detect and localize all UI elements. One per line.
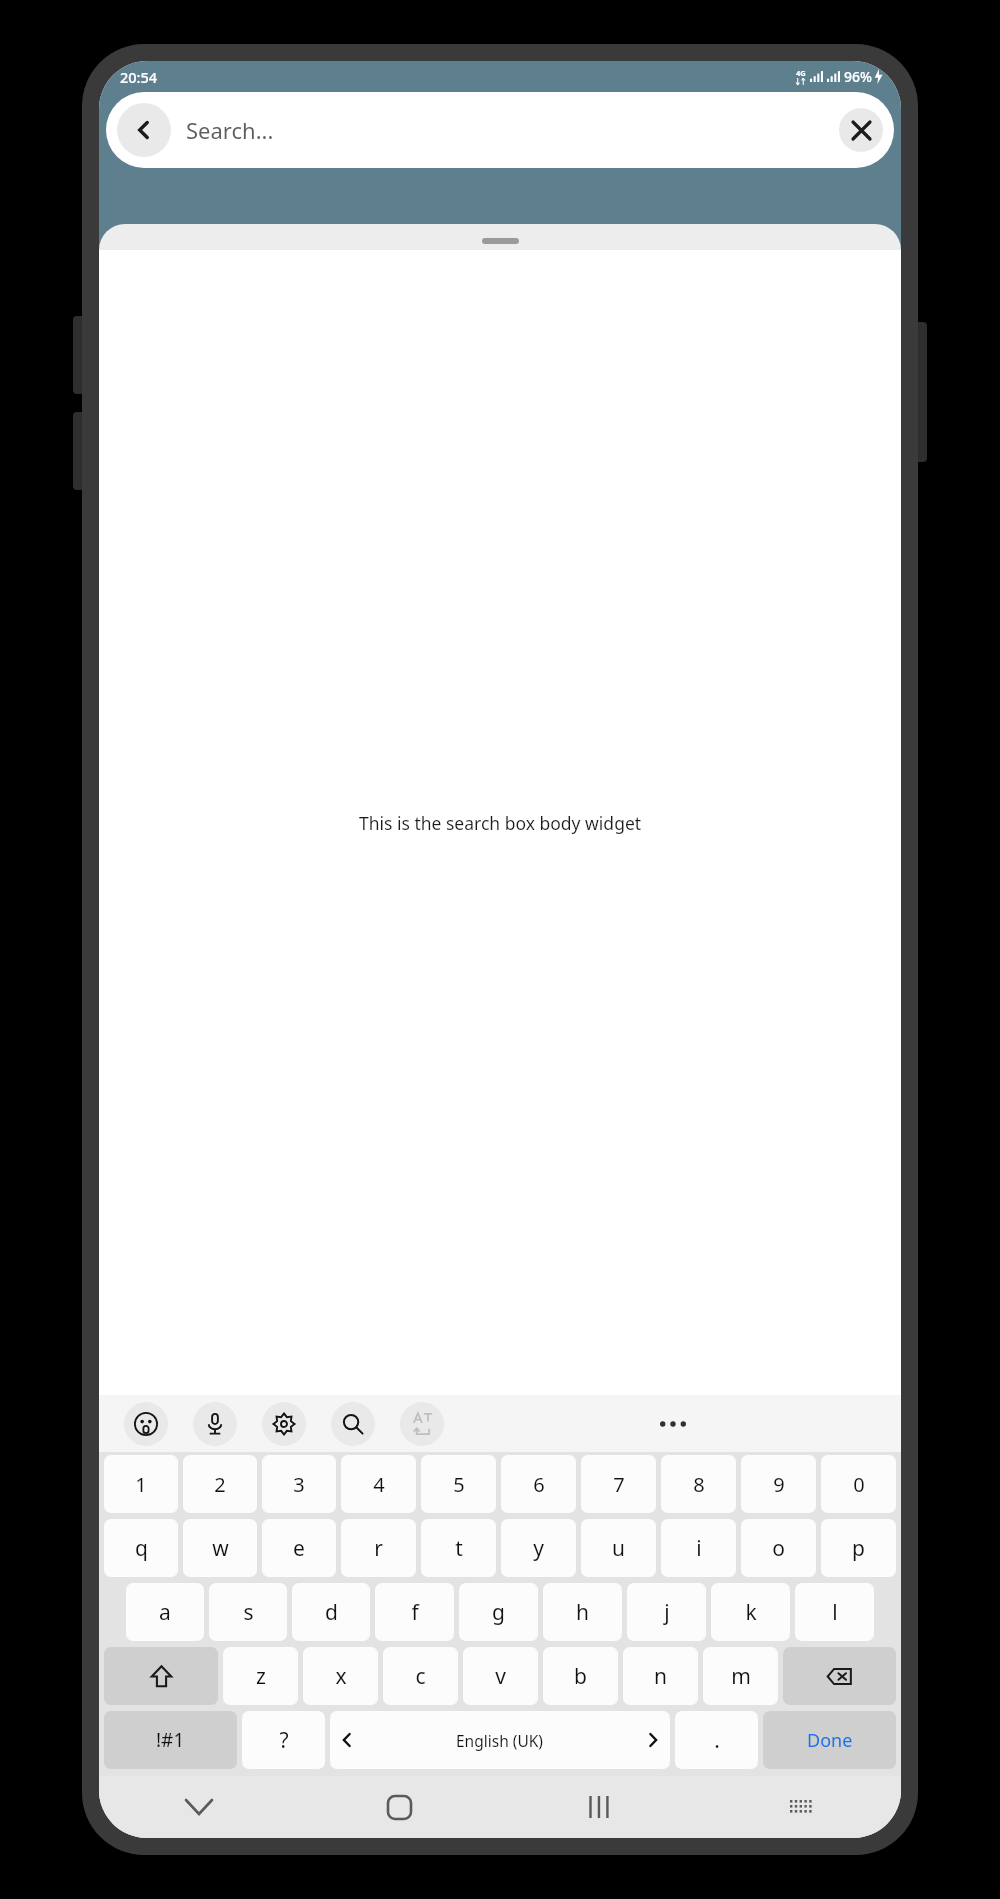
staticText: i — [696, 1534, 702, 1563]
staticText: b — [574, 1662, 587, 1691]
button[interactable]: ? — [242, 1711, 325, 1769]
staticText: 4G — [796, 68, 806, 78]
staticText: 9 — [773, 1471, 785, 1498]
button[interactable]: q — [104, 1519, 178, 1577]
button[interactable]: 1 — [104, 1455, 178, 1513]
staticText: u — [612, 1534, 625, 1563]
staticText: w — [212, 1534, 229, 1563]
button[interactable]: n — [623, 1647, 698, 1705]
staticText: 20:54 — [120, 67, 158, 87]
staticText: x — [335, 1662, 347, 1691]
staticText: n — [654, 1662, 667, 1691]
staticText: 6 — [533, 1471, 545, 1498]
staticText: Done — [807, 1728, 853, 1753]
button[interactable]: Done — [763, 1711, 896, 1769]
staticText: o — [772, 1534, 785, 1563]
staticText: Search... — [186, 115, 274, 145]
button[interactable]: 9 — [741, 1455, 816, 1513]
button[interactable]: l — [795, 1583, 874, 1641]
staticText: y — [533, 1534, 544, 1563]
button[interactable]: d — [292, 1583, 370, 1641]
staticText: This is the search box body widget — [359, 811, 642, 835]
button[interactable]: h — [543, 1583, 622, 1641]
button[interactable]: Backspace — [783, 1647, 896, 1705]
button[interactable]: y — [501, 1519, 576, 1577]
button[interactable]: p — [821, 1519, 896, 1577]
button[interactable]: 6 — [501, 1455, 576, 1513]
staticText: g — [492, 1598, 505, 1627]
button[interactable]: !#1 — [104, 1711, 237, 1769]
button[interactable]: g — [459, 1583, 538, 1641]
button[interactable]: e — [262, 1519, 336, 1577]
button[interactable]: . — [675, 1711, 758, 1769]
button[interactable]: j — [627, 1583, 706, 1641]
staticText: h — [576, 1598, 589, 1627]
staticText: 8 — [693, 1471, 705, 1498]
button[interactable]: s — [209, 1583, 287, 1641]
button[interactable]: Keyboard layout — [700, 1776, 901, 1838]
staticText: 0 — [853, 1471, 865, 1498]
button[interactable]: z — [223, 1647, 298, 1705]
button[interactable]: w — [183, 1519, 257, 1577]
button[interactable]: 2 — [183, 1455, 257, 1513]
staticText: c — [415, 1662, 426, 1691]
staticText: l — [832, 1598, 838, 1627]
button[interactable]: o — [741, 1519, 816, 1577]
staticText: j — [664, 1598, 670, 1627]
staticText: v — [495, 1662, 506, 1691]
button[interactable]: Recents — [499, 1776, 700, 1838]
staticText: 3 — [293, 1471, 305, 1498]
staticText: 1 — [135, 1471, 147, 1498]
button[interactable]: 0 — [821, 1455, 896, 1513]
button[interactable]: Back — [117, 103, 171, 157]
staticText: . — [714, 1726, 720, 1755]
button[interactable]: k — [711, 1583, 790, 1641]
button[interactable]: Clear — [839, 108, 883, 152]
staticText: z — [256, 1662, 266, 1691]
button[interactable]: i — [661, 1519, 736, 1577]
button[interactable]: u — [581, 1519, 656, 1577]
staticText: 2 — [214, 1471, 226, 1498]
button[interactable]: m — [703, 1647, 778, 1705]
staticText: 4 — [373, 1471, 385, 1498]
button[interactable]: f — [375, 1583, 454, 1641]
staticText: 96% — [844, 67, 872, 86]
button[interactable]: r — [341, 1519, 416, 1577]
staticText: 7 — [613, 1471, 625, 1498]
button[interactable]: Search — [318, 1395, 387, 1452]
staticText: m — [731, 1662, 751, 1691]
button[interactable]: More options — [456, 1395, 889, 1452]
button[interactable]: English (UK) — [330, 1711, 670, 1769]
button[interactable]: 5 — [421, 1455, 496, 1513]
staticText: !#1 — [156, 1727, 185, 1753]
staticText: f — [411, 1598, 419, 1627]
button[interactable]: 7 — [581, 1455, 656, 1513]
button[interactable]: b — [543, 1647, 618, 1705]
staticText: 5 — [453, 1471, 465, 1498]
staticText: k — [745, 1598, 757, 1627]
staticText: s — [243, 1598, 254, 1627]
button[interactable]: v — [463, 1647, 538, 1705]
button[interactable]: Emoji — [111, 1395, 180, 1452]
button[interactable]: Home — [299, 1776, 499, 1838]
button[interactable]: Shift — [104, 1647, 218, 1705]
button[interactable]: Hide keyboard — [99, 1776, 299, 1838]
button[interactable]: 3 — [262, 1455, 336, 1513]
staticText: a — [159, 1598, 171, 1627]
button[interactable]: Translate — [387, 1395, 456, 1452]
button[interactable]: Settings — [249, 1395, 318, 1452]
staticText: p — [852, 1534, 865, 1563]
button[interactable]: c — [383, 1647, 458, 1705]
button[interactable]: t — [421, 1519, 496, 1577]
button[interactable]: 8 — [661, 1455, 736, 1513]
staticText: ? — [279, 1726, 289, 1755]
staticText: English (UK) — [456, 1730, 543, 1751]
button[interactable]: a — [126, 1583, 204, 1641]
button[interactable]: 4 — [341, 1455, 416, 1513]
staticText: d — [325, 1598, 338, 1627]
button[interactable]: x — [303, 1647, 378, 1705]
button[interactable]: Voice input — [180, 1395, 249, 1452]
staticText: e — [293, 1534, 305, 1563]
staticText: q — [135, 1534, 148, 1563]
staticText: t — [455, 1534, 463, 1563]
